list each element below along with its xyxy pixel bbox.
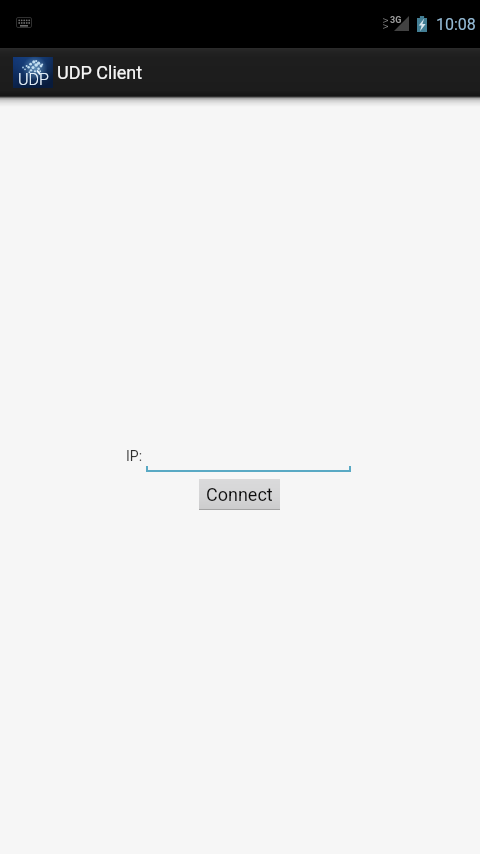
staticText: UDP xyxy=(18,70,49,89)
button[interactable]: IP address input xyxy=(146,443,351,472)
staticText: Connect xyxy=(206,484,273,505)
button[interactable]: Connect xyxy=(199,479,280,510)
other: Keyboard notification xyxy=(16,17,32,28)
button[interactable]: UDP xyxy=(0,48,480,96)
staticText: 3G xyxy=(390,15,402,26)
staticText: 10:08 xyxy=(436,15,476,34)
staticText: UDP Client xyxy=(57,62,143,83)
staticText: IP: xyxy=(126,448,143,464)
